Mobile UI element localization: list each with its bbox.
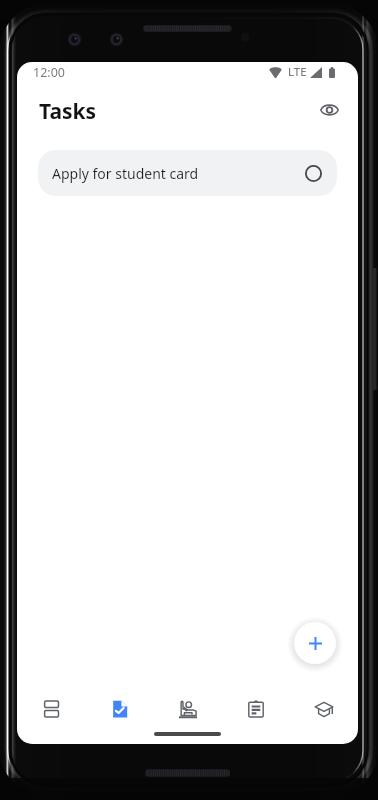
staticText: Apply for student card [52,164,199,183]
button[interactable]: Add task [294,622,336,664]
button[interactable]: Assignments [222,690,290,727]
staticText: 12:00 [33,64,65,81]
button[interactable]: Tasks [86,690,154,727]
staticText: Tasks [39,97,97,126]
button[interactable]: Apply for student card [38,150,337,196]
button[interactable]: Grades [290,690,358,727]
staticText: LTE [288,64,307,80]
button[interactable]: Classes [154,690,222,727]
button[interactable]: Toggle visibility [314,95,344,125]
button[interactable]: Dashboard [17,690,86,727]
